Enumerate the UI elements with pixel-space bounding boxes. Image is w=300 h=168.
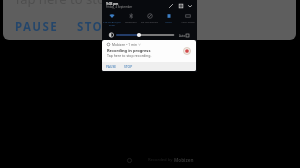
staticText: Do not disturb [141,20,158,23]
staticText: Recorded by [148,157,174,163]
staticText: Mobizen • 1 min [112,42,137,46]
staticText: Tap here to stop recording. [107,53,152,58]
staticText: Tap here to stop recording. [14,0,179,8]
staticText: Bluetooth [125,20,137,23]
staticText: PAUSE [106,64,117,68]
button[interactable]: Torch [159,13,178,23]
button[interactable]: Settings [178,3,184,9]
staticText: Mobizen [174,157,194,163]
button[interactable]: CHITTARANJAN PARK [102,13,121,26]
button[interactable]: PAUSE [15,19,58,35]
button[interactable]: Bluetooth [121,13,140,23]
button[interactable]: PAUSE [106,64,117,68]
button[interactable]: Stop recording [183,47,191,55]
button[interactable]: Auto-rotate [178,13,197,23]
staticText: Torch [165,20,172,23]
staticText: Auto [179,34,186,38]
staticText: 9:03 pm [106,2,119,6]
button[interactable]: Auto brightness [186,34,189,37]
button[interactable]: Do not disturb [140,13,159,23]
button[interactable]: Edit [168,3,174,9]
staticText: CHITTARANJAN PARK [103,20,121,26]
button[interactable]: STOP [77,19,112,35]
button[interactable]: STOP [124,64,133,68]
staticText: Auto-rotate [181,20,195,23]
staticText: Friday, 4 September [106,5,133,9]
staticText: Recording in progress [107,48,151,53]
staticText: STOP [124,64,133,68]
button[interactable]: Collapse [187,3,193,9]
